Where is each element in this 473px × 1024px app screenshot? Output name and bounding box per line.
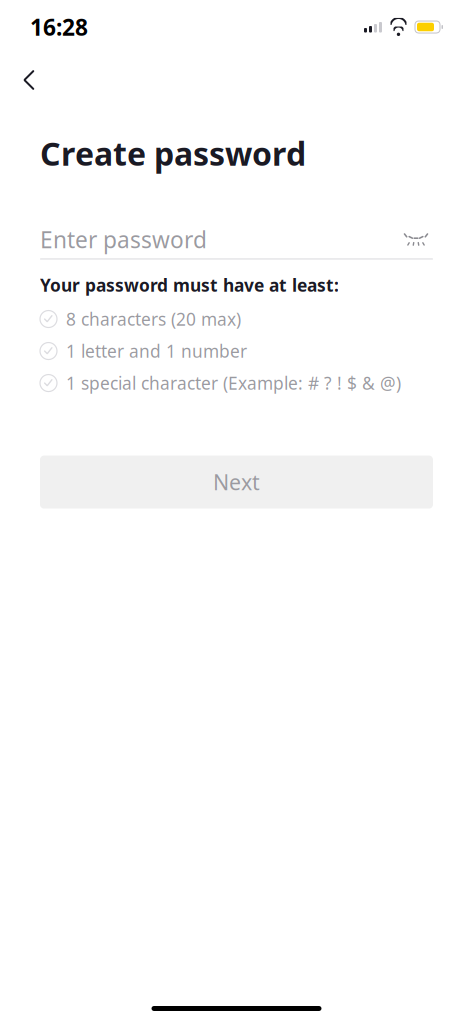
staticText: 1 letter and 1 number bbox=[66, 339, 247, 362]
staticText: Next bbox=[213, 468, 260, 496]
staticText: Your password must have at least: bbox=[40, 273, 339, 296]
staticText: Enter password bbox=[40, 224, 207, 254]
staticText: 16:28 bbox=[30, 12, 88, 42]
button[interactable]: Show password bbox=[399, 224, 433, 254]
staticText: 1 special character (Example: # ? ! $ & … bbox=[66, 371, 401, 394]
staticText: 8 characters (20 max) bbox=[66, 307, 241, 330]
button[interactable]: Next bbox=[40, 456, 433, 509]
staticText: Create password bbox=[40, 132, 306, 174]
button[interactable]: Back bbox=[7, 58, 51, 102]
